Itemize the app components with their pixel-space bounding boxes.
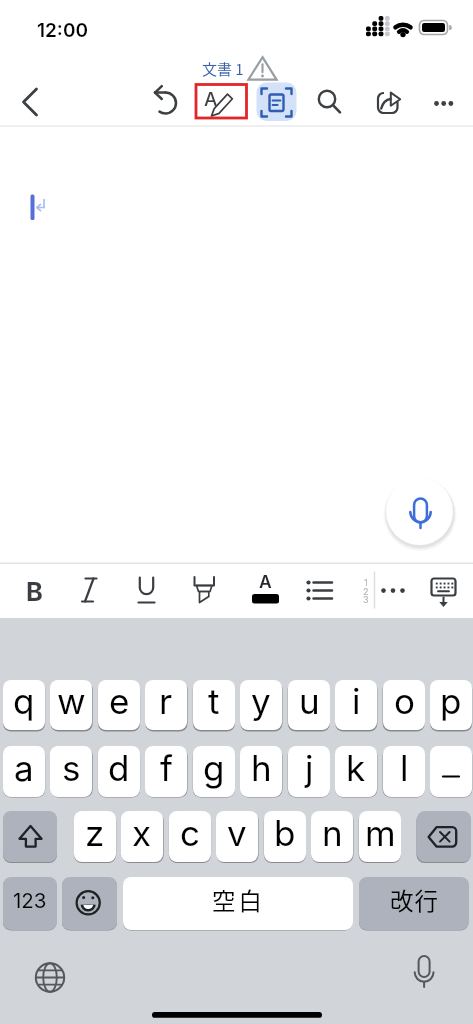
button[interactable] [72,572,108,608]
staticText: 改行 [390,883,439,917]
button[interactable]: g [193,746,235,797]
staticText: k [346,747,366,789]
button[interactable] [424,86,460,122]
staticText: c [180,812,200,854]
staticText: 12:00 [37,19,88,42]
button[interactable]: p [430,680,472,730]
button[interactable] [16,572,52,608]
button[interactable] [3,811,57,862]
button[interactable]: c [169,811,211,862]
staticText: A [259,571,272,592]
staticText: n [322,812,343,854]
button[interactable] [425,572,461,608]
button[interactable] [128,572,164,608]
button[interactable]: v [216,811,258,862]
staticText: s [62,747,81,789]
button[interactable] [62,877,117,930]
button[interactable]: w [50,680,92,730]
staticText: B [26,576,43,604]
button[interactable]: x [121,811,163,862]
button[interactable]: k [335,746,377,797]
button[interactable] [247,572,283,608]
staticText: 空白 [212,883,265,917]
button[interactable]: q [3,680,45,730]
button[interactable] [386,478,453,545]
staticText: a [14,747,34,789]
button[interactable]: n [311,811,353,862]
button[interactable]: m [359,811,401,862]
staticText: t [208,680,220,722]
button[interactable]: 123 [3,877,57,930]
staticText: e [109,680,130,722]
staticText: r [159,680,173,722]
staticText: m [365,812,396,854]
staticText: j [305,747,314,789]
button[interactable]: u [288,680,330,730]
staticText: 123 [13,888,47,913]
button[interactable] [375,572,411,608]
button[interactable] [196,84,247,118]
button[interactable]: 空白 [123,877,353,930]
button[interactable]: b [264,811,306,862]
staticText: f [160,747,173,789]
button[interactable]: t [193,680,235,730]
button[interactable]: d [98,746,140,797]
button[interactable] [365,84,401,120]
button[interactable]: o [383,680,425,730]
button[interactable] [302,572,338,608]
button[interactable] [30,957,70,997]
staticText: x [132,812,152,854]
button[interactable]: a [3,746,45,797]
button[interactable] [186,572,222,608]
staticText: 3 [363,594,369,604]
staticText: 2 [363,586,369,596]
button[interactable]: f [145,746,187,797]
staticText: z [85,812,105,854]
staticText: v [227,812,247,854]
button[interactable]: h [240,746,282,797]
staticText: w [57,680,86,722]
staticText: u [299,680,320,722]
button[interactable]: 改行 [359,877,469,930]
button[interactable]: l [383,746,425,797]
staticText: q [13,680,35,722]
staticText: h [251,747,272,789]
button[interactable]: i [335,680,377,730]
staticText: p [440,680,462,722]
button[interactable] [257,83,297,122]
button[interactable]: z [74,811,116,862]
button[interactable] [149,84,185,120]
staticText: i [352,680,361,722]
button[interactable]: r [145,680,187,730]
staticText: A [204,88,218,110]
button[interactable]: e [98,680,140,730]
button[interactable] [430,746,472,797]
staticText: b [274,812,296,854]
staticText: d [108,747,130,789]
staticText: l [400,747,409,789]
staticText: y [251,680,271,722]
staticText: 1 [364,577,368,587]
staticText: 文書 1 [202,58,244,80]
button[interactable]: y [240,680,282,730]
staticText: g [203,747,225,789]
button[interactable] [310,82,346,118]
button[interactable] [404,954,444,994]
button[interactable] [12,84,48,120]
staticText: o [394,680,415,722]
button[interactable]: j [288,746,330,797]
button[interactable]: s [50,746,92,797]
button[interactable] [417,811,471,862]
